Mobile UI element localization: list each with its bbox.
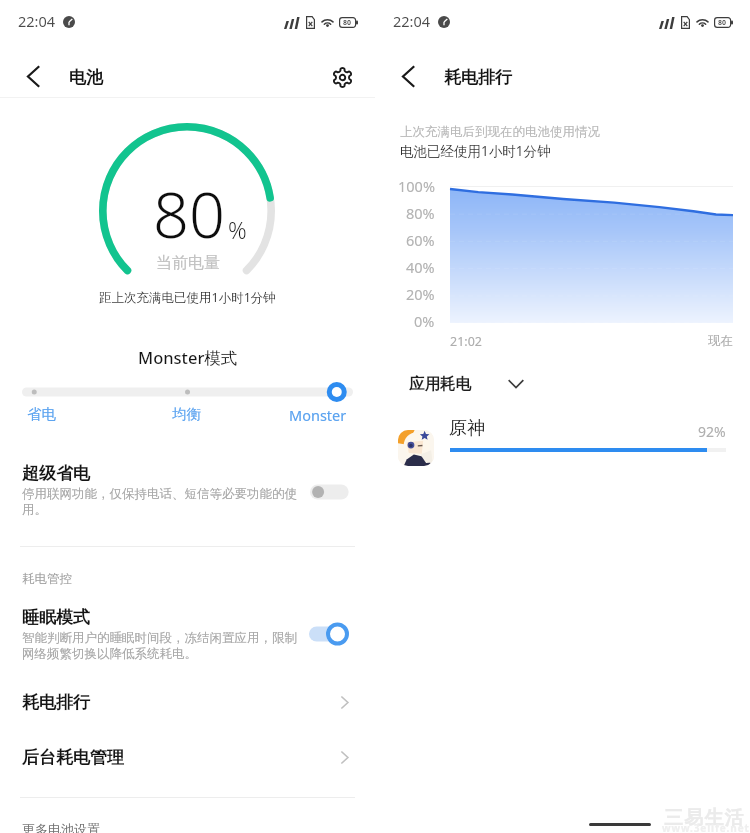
staticText: www.3elife.net — [662, 821, 750, 833]
staticText: 22:04 — [18, 11, 56, 31]
staticText: 原神 — [449, 417, 485, 440]
button[interactable]: Back — [10, 53, 56, 99]
staticText: 更多电池设置 — [22, 821, 100, 833]
staticText: 92% — [698, 422, 726, 441]
staticText: 60% — [406, 230, 435, 250]
button[interactable]: 原神 — [375, 420, 750, 480]
staticText: 80 — [718, 18, 727, 28]
staticText: % — [228, 214, 247, 245]
staticText: 耗电排行 — [444, 67, 512, 88]
staticText: 当前电量 — [156, 253, 220, 273]
staticText: 后台耗电管理 — [22, 747, 336, 768]
staticText: 21:02 — [450, 333, 482, 350]
button[interactable]: 超级省电 — [0, 454, 375, 524]
staticText: 0% — [414, 311, 435, 331]
staticText: 耗电排行 — [22, 692, 336, 713]
staticText: 省电 — [27, 405, 56, 423]
button[interactable]: Settings — [320, 55, 364, 99]
button[interactable]: 睡眠模式 — [0, 598, 375, 668]
staticText: Monster模式 — [138, 346, 238, 369]
button[interactable]: 应用耗电 — [399, 369, 534, 399]
staticText: Monster — [289, 405, 347, 425]
staticText: 22:04 — [393, 11, 431, 31]
staticText: 超级省电 — [22, 463, 90, 484]
staticText: 智能判断用户的睡眠时间段，冻结闲置应用，限制网络频繁切换以降低系统耗电。 — [22, 630, 302, 662]
staticText: 均衡 — [172, 405, 201, 423]
button[interactable]: Sleep mode on — [308, 622, 350, 646]
staticText: 20% — [406, 284, 435, 304]
staticText: 耗电管控 — [22, 571, 72, 587]
staticText: 三易生活 — [664, 806, 745, 830]
staticText: 80% — [406, 203, 435, 223]
staticText: 距上次充满电已使用1小时1分钟 — [99, 289, 276, 306]
button[interactable]: 耗电排行 — [0, 679, 375, 725]
staticText: 100% — [398, 176, 435, 196]
button[interactable]: Back — [385, 53, 431, 99]
staticText: 现在 — [708, 333, 733, 349]
staticText: 停用联网功能，仅保持电话、短信等必要功能的使用。 — [22, 486, 302, 518]
staticText: 电池 — [69, 67, 103, 88]
staticText: 80 — [343, 18, 352, 28]
staticText: 电池已经使用1小时1分钟 — [400, 142, 551, 160]
staticText: 上次充满电后到现在的电池使用情况 — [400, 124, 600, 140]
staticText: 睡眠模式 — [22, 607, 90, 628]
button[interactable]: 后台耗电管理 — [0, 734, 375, 780]
staticText: 应用耗电 — [409, 374, 471, 394]
staticText: 80 — [153, 171, 225, 257]
staticText: 40% — [406, 257, 435, 277]
button[interactable]: Super power saving off — [309, 480, 351, 504]
